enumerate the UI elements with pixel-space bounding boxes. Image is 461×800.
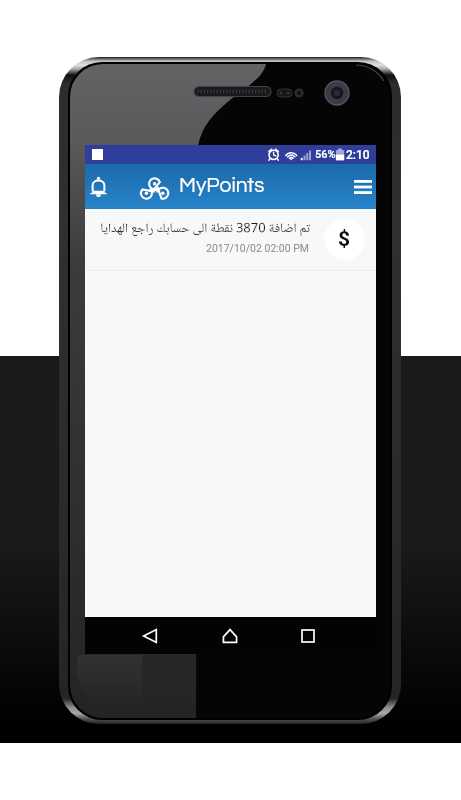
button[interactable]: Notifications — [81, 169, 116, 204]
button[interactable]: تم اضافة 3870 نقطة الى حسابك راجع الهداي… — [85, 209, 376, 270]
staticText: 2:10 — [346, 148, 370, 162]
staticText: تم اضافة 3870 نقطة الى حسابك راجع الهداي… — [100, 220, 310, 238]
button[interactable]: Menu — [345, 169, 380, 204]
staticText: $ — [338, 227, 351, 252]
button[interactable]: Recents — [290, 618, 326, 654]
staticText: 56% — [315, 148, 336, 161]
staticText: 2017/10/02 02:00 PM — [206, 242, 310, 254]
button[interactable]: Back — [132, 618, 168, 654]
staticText: MyPoints — [179, 175, 265, 197]
button[interactable]: Home — [212, 618, 248, 654]
